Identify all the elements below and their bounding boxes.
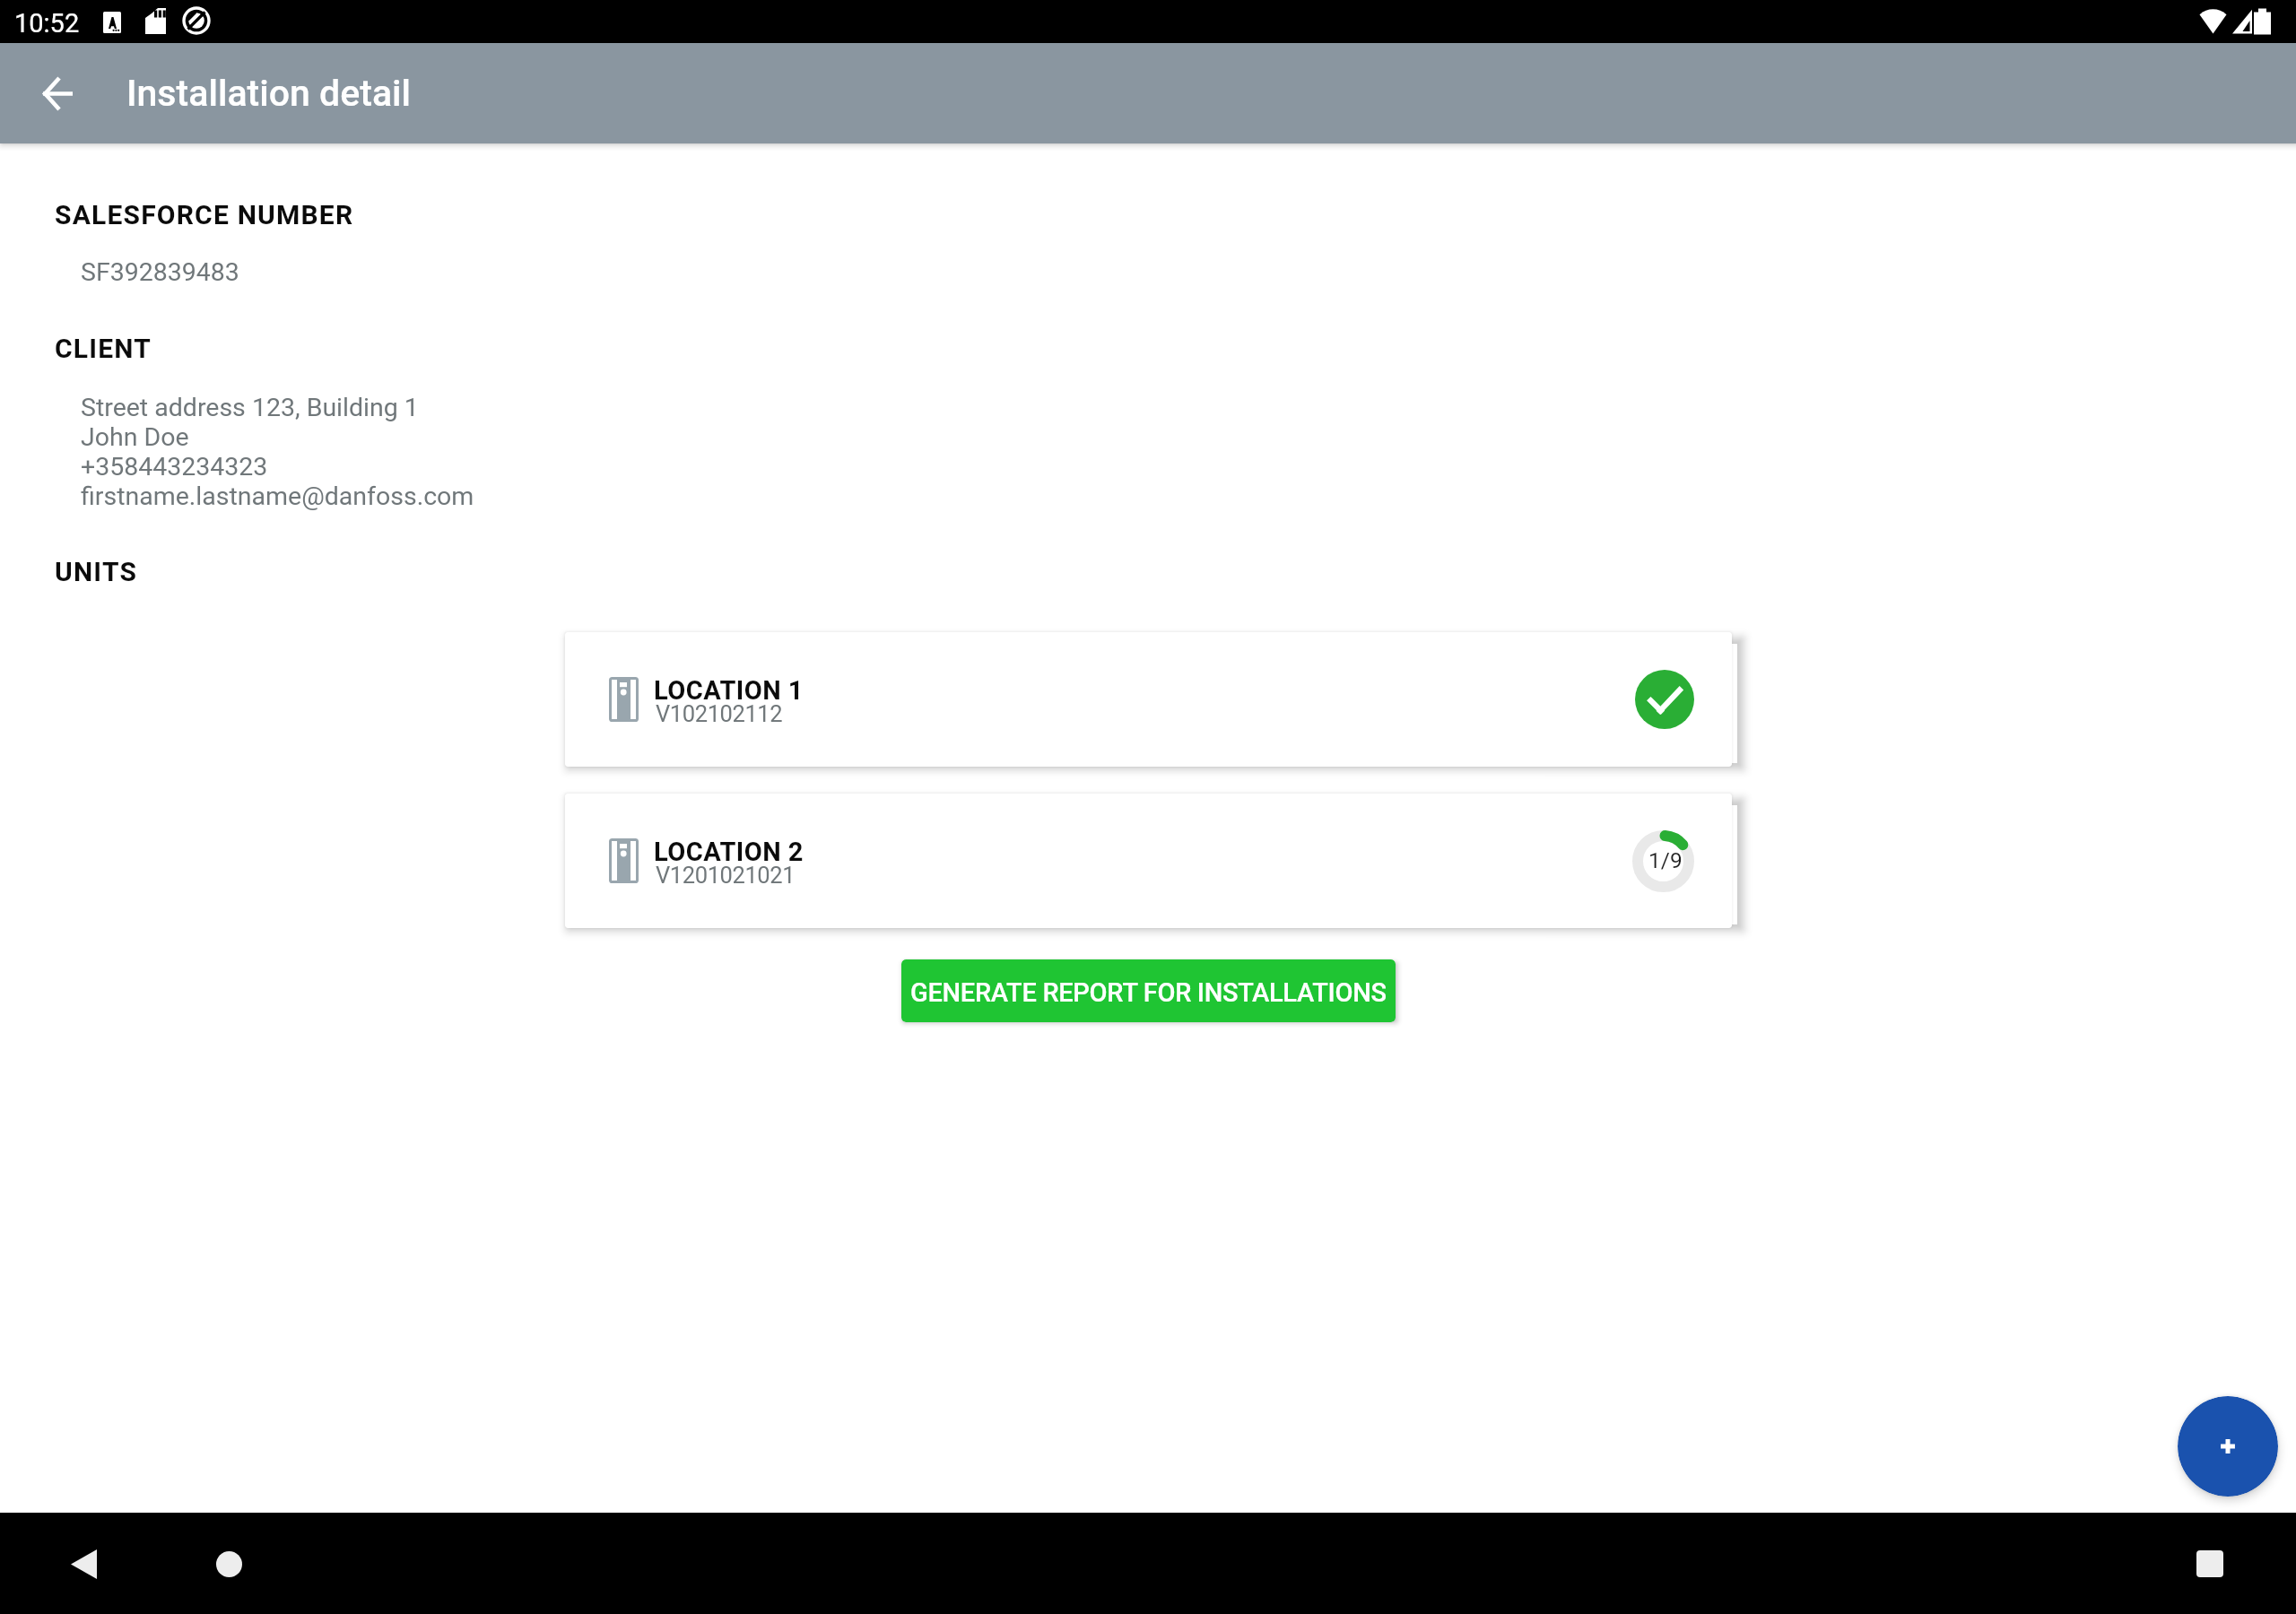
staticText: 10:52 — [14, 8, 80, 39]
staticText: CLIENT — [55, 333, 152, 364]
button[interactable]: Recent apps — [2183, 1537, 2237, 1591]
staticText: UNITS — [55, 556, 138, 587]
button[interactable]: LOCATION 1 — [565, 632, 1732, 767]
staticText: V1201021021 — [656, 862, 796, 889]
staticText: Installation detail — [126, 72, 412, 115]
button[interactable]: Back — [57, 1537, 110, 1591]
staticText: V102102112 — [656, 700, 783, 727]
button[interactable]: Home — [202, 1537, 256, 1591]
staticText: 1/9 — [1648, 847, 1683, 873]
staticText: SALESFORCE NUMBER — [55, 199, 354, 230]
staticText: John Doe — [81, 422, 189, 452]
button[interactable]: Back — [29, 65, 86, 122]
staticText: LOCATION 2 — [654, 837, 804, 867]
button[interactable]: Add — [2178, 1396, 2278, 1497]
staticText: GENERATE REPORT FOR INSTALLATIONS — [910, 977, 1387, 1008]
button[interactable]: LOCATION 2 — [565, 794, 1732, 928]
button[interactable]: GENERATE REPORT FOR INSTALLATIONS — [901, 959, 1396, 1022]
staticText: Street address 123, Building 1 — [81, 393, 419, 422]
staticText: SF392839483 — [81, 257, 239, 287]
staticText: +358443234323 — [81, 452, 268, 482]
staticText: firstname.lastname@danfoss.com — [81, 482, 474, 511]
staticText: LOCATION 1 — [654, 675, 804, 706]
